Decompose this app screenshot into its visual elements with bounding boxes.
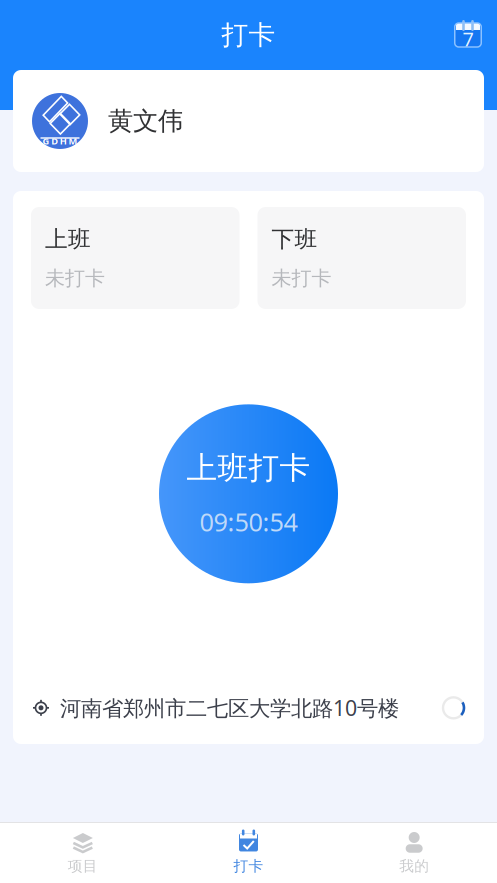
staticText: 黄文伟 <box>108 105 183 136</box>
staticText: 未打卡 <box>45 266 105 291</box>
staticText: 打卡 <box>221 19 275 51</box>
button[interactable]: 打卡 <box>166 823 331 883</box>
button[interactable]: 上班 <box>31 207 239 309</box>
button[interactable]: Calendar <box>451 18 485 52</box>
button[interactable]: 我的 <box>331 823 497 883</box>
staticText: 7 <box>462 26 473 52</box>
staticText: 上班 <box>45 225 91 253</box>
staticText: 下班 <box>271 225 317 253</box>
staticText: 河南省郑州市二七区大学北路10号楼 <box>60 694 399 722</box>
button[interactable]: 上班打卡 <box>159 404 338 583</box>
staticText: 我的 <box>399 857 429 875</box>
button[interactable]: 下班 <box>257 207 466 309</box>
staticText: 上班打卡 <box>186 449 310 487</box>
button[interactable]: 项目 <box>0 823 166 883</box>
staticText: 未打卡 <box>271 266 331 291</box>
staticText: 项目 <box>68 857 98 875</box>
staticText: 打卡 <box>233 857 263 875</box>
staticText: 09:50:54 <box>199 505 297 538</box>
staticText: GDHM <box>43 135 77 147</box>
